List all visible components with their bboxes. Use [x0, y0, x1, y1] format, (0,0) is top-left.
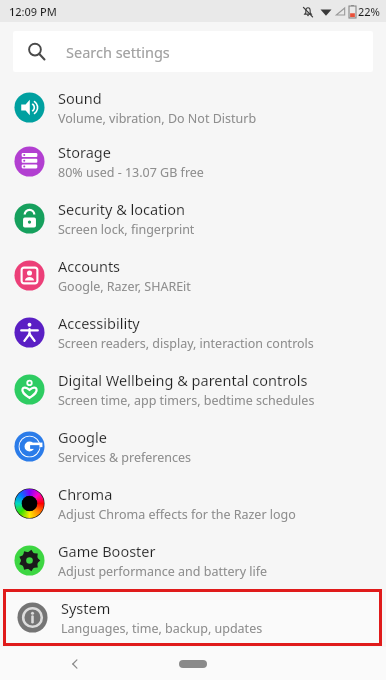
button[interactable]: Game Booster — [0, 532, 386, 589]
staticText: Services & preferences — [58, 449, 192, 466]
staticText: Screen readers, display, interaction con… — [58, 335, 314, 352]
staticText: Security & location — [58, 199, 185, 219]
button[interactable]: System — [6, 592, 379, 643]
button[interactable]: Digital Wellbeing & parental controls — [0, 361, 386, 418]
staticText: 22% — [358, 4, 380, 19]
button[interactable]: Chroma — [0, 475, 386, 532]
staticText: Accessibility — [58, 313, 140, 333]
button[interactable]: Accessibility — [0, 304, 386, 361]
staticText: Google — [58, 427, 107, 447]
staticText: Adjust performance and battery life — [58, 563, 268, 580]
button[interactable]: Accounts — [0, 247, 386, 304]
button[interactable]: Search settings — [13, 31, 373, 72]
button[interactable]: Back — [62, 651, 88, 677]
button[interactable]: Home — [166, 651, 220, 677]
staticText: Sound — [58, 88, 102, 108]
staticText: Languages, time, backup, updates — [61, 620, 263, 637]
staticText: Screen lock, fingerprint — [58, 221, 195, 238]
button[interactable]: Sound — [0, 81, 386, 133]
staticText: Screen time, app timers, bedtime schedul… — [58, 392, 315, 409]
button[interactable]: Google — [0, 418, 386, 475]
staticText: Digital Wellbeing & parental controls — [58, 370, 308, 390]
staticText: Game Booster — [58, 541, 156, 561]
staticText: 12:09 PM — [9, 4, 57, 19]
staticText: 80% used - 13.07 GB free — [58, 164, 204, 181]
staticText: Search settings — [66, 42, 170, 62]
staticText: Chroma — [58, 484, 113, 504]
staticText: Accounts — [58, 256, 121, 276]
staticText: Google, Razer, SHAREit — [58, 278, 191, 295]
staticText: System — [61, 598, 111, 618]
button[interactable]: Storage — [0, 133, 386, 190]
staticText: Volume, vibration, Do Not Disturb — [58, 110, 257, 127]
button[interactable]: Security & location — [0, 190, 386, 247]
staticText: Adjust Chroma effects for the Razer logo — [58, 506, 296, 523]
staticText: Storage — [58, 142, 111, 162]
